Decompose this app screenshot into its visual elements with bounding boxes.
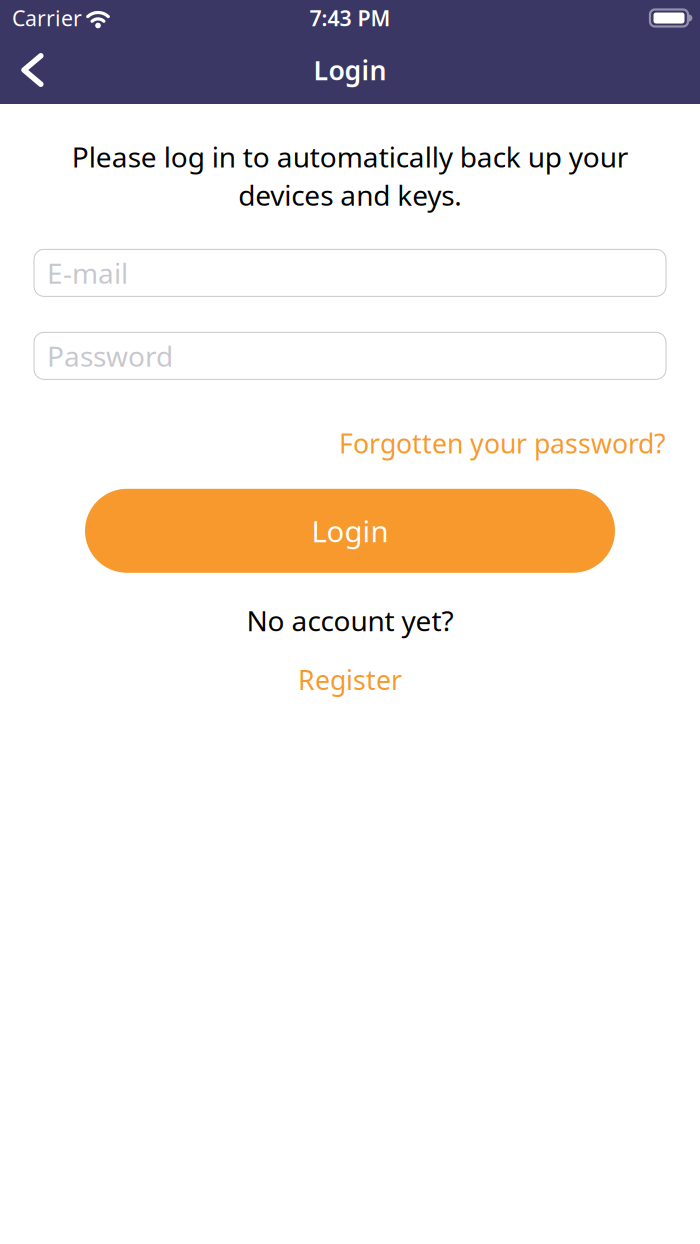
button[interactable]: Register (298, 662, 402, 697)
staticText: Please log in to automatically back up y… (71, 138, 628, 213)
button[interactable]: Password (34, 332, 666, 379)
button[interactable]: Login (85, 489, 615, 573)
staticText: No account yet? (246, 602, 453, 639)
button[interactable]: Back (0, 37, 44, 103)
staticText: E-mail (47, 254, 128, 291)
button[interactable]: E-mail (34, 249, 666, 296)
staticText: Register (298, 662, 402, 697)
staticText: Login (313, 52, 386, 88)
button[interactable]: Forgotten your password? (339, 425, 666, 461)
staticText: Carrier (12, 4, 82, 32)
staticText: Password (47, 337, 173, 374)
staticText: Forgotten your password? (339, 425, 666, 461)
staticText: 7:43 PM (309, 4, 390, 32)
staticText: Login (311, 511, 388, 550)
